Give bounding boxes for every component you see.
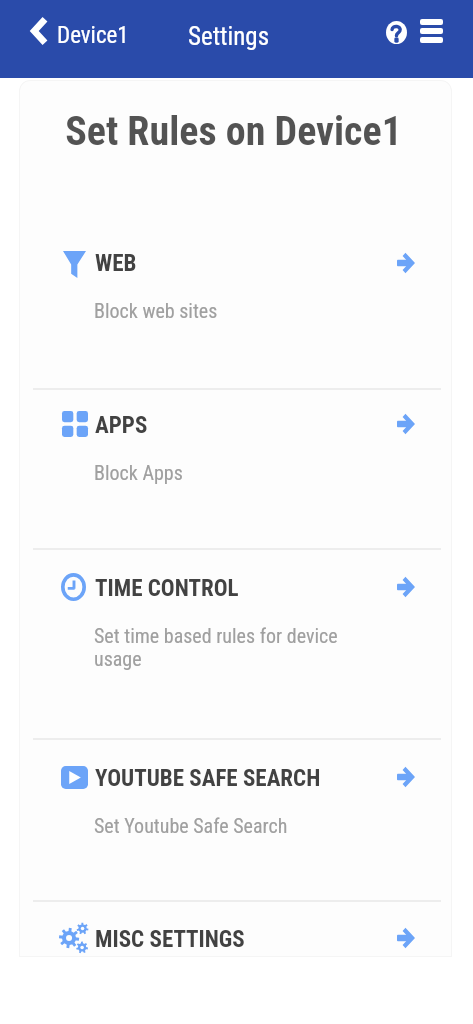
- staticText: Settings: [188, 22, 270, 51]
- staticText: Device1: [57, 22, 129, 49]
- staticText: Block web sites: [94, 299, 218, 322]
- button[interactable]: WEB: [19, 190, 452, 388]
- other: Open APPS: [397, 413, 415, 435]
- staticText: TIME CONTROL: [95, 575, 239, 602]
- staticText: APPS: [95, 412, 148, 439]
- staticText: YOUTUBE SAFE SEARCH: [95, 765, 321, 792]
- other: Open MISC SETTINGS: [397, 927, 415, 949]
- button[interactable]: TIME CONTROL: [19, 550, 452, 738]
- other: Open YOUTUBE SAFE SEARCH: [397, 766, 415, 788]
- button[interactable]: Device1: [19, 8, 135, 54]
- button[interactable]: APPS: [19, 390, 452, 548]
- staticText: Set Youtube Safe Search: [94, 814, 288, 837]
- staticText: usage: [94, 647, 142, 670]
- button[interactable]: Menu: [412, 19, 450, 43]
- button[interactable]: MISC SETTINGS: [19, 902, 452, 957]
- staticText: WEB: [95, 250, 137, 277]
- other: Open TIME CONTROL: [397, 576, 415, 598]
- staticText: Set Rules on Device1: [19, 108, 450, 155]
- staticText: Set time based rules for device: [94, 624, 338, 647]
- other: Open WEB: [397, 252, 415, 274]
- staticText: MISC SETTINGS: [95, 926, 245, 953]
- staticText: Block Apps: [94, 461, 183, 484]
- button[interactable]: YOUTUBE SAFE SEARCH: [19, 740, 452, 900]
- button[interactable]: Help: [377, 13, 415, 51]
